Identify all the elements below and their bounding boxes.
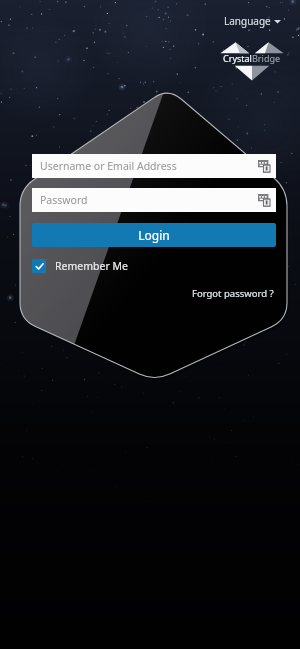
- other: Autofill: [257, 193, 271, 207]
- button[interactable]: Forgot password ?: [190, 285, 276, 302]
- button[interactable]: Remember Me: [32, 259, 134, 273]
- staticText: Remember Me: [55, 259, 128, 273]
- staticText: Language: [224, 14, 271, 28]
- other: CrystalBridge logo: [216, 34, 288, 82]
- staticText: Password: [40, 193, 88, 207]
- staticText: Crystal: [223, 52, 252, 64]
- button[interactable]: Username or Email Address: [32, 154, 276, 178]
- staticText: Forgot password ?: [192, 287, 274, 300]
- button[interactable]: Login: [32, 223, 276, 247]
- staticText: Login: [138, 227, 170, 243]
- staticText: Bridge: [252, 52, 281, 64]
- other: Autofill: [257, 159, 271, 173]
- button[interactable]: Password: [32, 188, 276, 212]
- staticText: Username or Email Address: [40, 159, 177, 173]
- button[interactable]: Language: [220, 12, 285, 30]
